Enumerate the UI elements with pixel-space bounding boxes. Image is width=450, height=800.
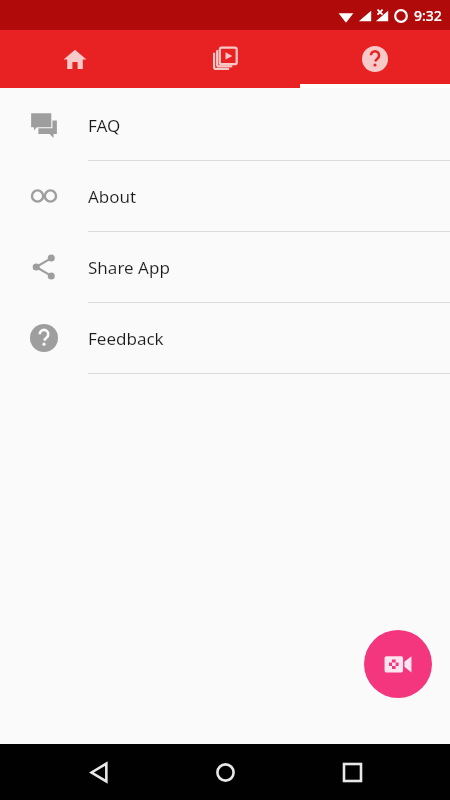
button[interactable]: Home (0, 30, 150, 88)
button[interactable]: New video (364, 630, 432, 698)
staticText: About (88, 185, 137, 208)
button[interactable]: FAQ (0, 90, 450, 161)
button[interactable]: Help (300, 30, 450, 88)
staticText: Feedback (88, 327, 164, 350)
staticText: 9:32 (414, 6, 442, 25)
button[interactable]: About (0, 161, 450, 232)
staticText: Share App (88, 256, 170, 279)
button[interactable]: Share App (0, 232, 450, 303)
button[interactable]: Library (150, 30, 300, 88)
button[interactable]: Back (71, 744, 127, 800)
button[interactable]: Home (197, 744, 253, 800)
button[interactable]: Feedback (0, 303, 450, 374)
button[interactable]: Recent apps (324, 744, 380, 800)
staticText: FAQ (88, 114, 121, 137)
